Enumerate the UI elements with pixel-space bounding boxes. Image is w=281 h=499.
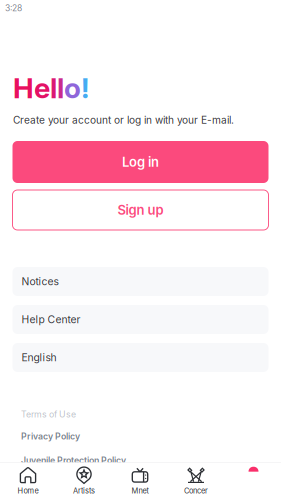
staticText: Notices bbox=[21, 275, 58, 288]
staticText: ! bbox=[81, 71, 89, 105]
button[interactable]: Juvenile Protection Policy bbox=[21, 455, 126, 466]
button[interactable]: Artists bbox=[56, 463, 112, 498]
staticText: Sign up bbox=[117, 202, 163, 218]
staticText: Help Center bbox=[21, 313, 80, 326]
staticText: e bbox=[34, 71, 50, 105]
button[interactable]: English bbox=[12, 343, 268, 372]
staticText: Mnet bbox=[131, 486, 148, 495]
button[interactable]: Help Center bbox=[12, 305, 268, 334]
staticText: Artists bbox=[73, 486, 95, 495]
staticText: Create your account or log in with your … bbox=[13, 114, 234, 126]
button[interactable]: Notices bbox=[12, 267, 268, 296]
staticText: l bbox=[57, 71, 64, 105]
staticText: Terms of Use bbox=[21, 409, 76, 420]
staticText: English bbox=[21, 351, 56, 364]
button[interactable]: Log in bbox=[12, 141, 268, 183]
button[interactable]: Terms of Use bbox=[21, 409, 76, 420]
button[interactable]: Mnet bbox=[112, 463, 168, 498]
staticText: Log in bbox=[122, 154, 159, 170]
staticText: Privacy Policy bbox=[21, 431, 80, 442]
staticText: Home bbox=[17, 486, 38, 495]
staticText: 3:28 bbox=[5, 3, 22, 13]
staticText: Juvenile Protection Policy bbox=[21, 455, 126, 466]
button[interactable]: Home bbox=[0, 463, 56, 498]
staticText: l bbox=[50, 71, 57, 105]
staticText: Concer bbox=[184, 486, 208, 495]
button[interactable]: Privacy Policy bbox=[21, 431, 80, 442]
button[interactable]: Concer bbox=[168, 463, 224, 498]
button[interactable]: Sign up bbox=[12, 190, 268, 230]
staticText: o bbox=[64, 71, 81, 105]
staticText: H bbox=[13, 71, 34, 105]
